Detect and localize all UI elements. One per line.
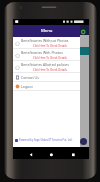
button[interactable]: Add — [80, 138, 87, 145]
staticText: Beneficiaries Without Photos — [21, 38, 69, 43]
staticText: Beneficiaries With Photos — [21, 50, 63, 55]
button[interactable]: Recents — [63, 147, 89, 159]
button[interactable]: Contact Us — [13, 73, 80, 82]
button[interactable]: Back — [13, 147, 38, 159]
staticText: Contact Us — [21, 75, 39, 80]
staticText: Click Here To Check Details — [33, 56, 67, 60]
staticText: Click Here To Check Details — [33, 68, 67, 72]
button[interactable]: Home — [38, 147, 63, 159]
button[interactable]: Beneficiaries Without Photos — [13, 37, 80, 49]
button[interactable]: Beneficiaries With Photos — [13, 49, 80, 61]
button[interactable]: Menu — [13, 25, 80, 37]
staticText: Powered by Sage Global IT Services Pvt. … — [19, 138, 73, 142]
button[interactable]: Logout — [13, 82, 80, 91]
staticText: Logout — [21, 84, 33, 89]
staticText: Beneficiaries Allotted policies — [21, 62, 69, 67]
staticText: Menu — [41, 28, 53, 34]
button[interactable]: Beneficiaries Allotted policies — [13, 61, 80, 73]
staticText: Click Here To Check Details — [33, 44, 67, 48]
